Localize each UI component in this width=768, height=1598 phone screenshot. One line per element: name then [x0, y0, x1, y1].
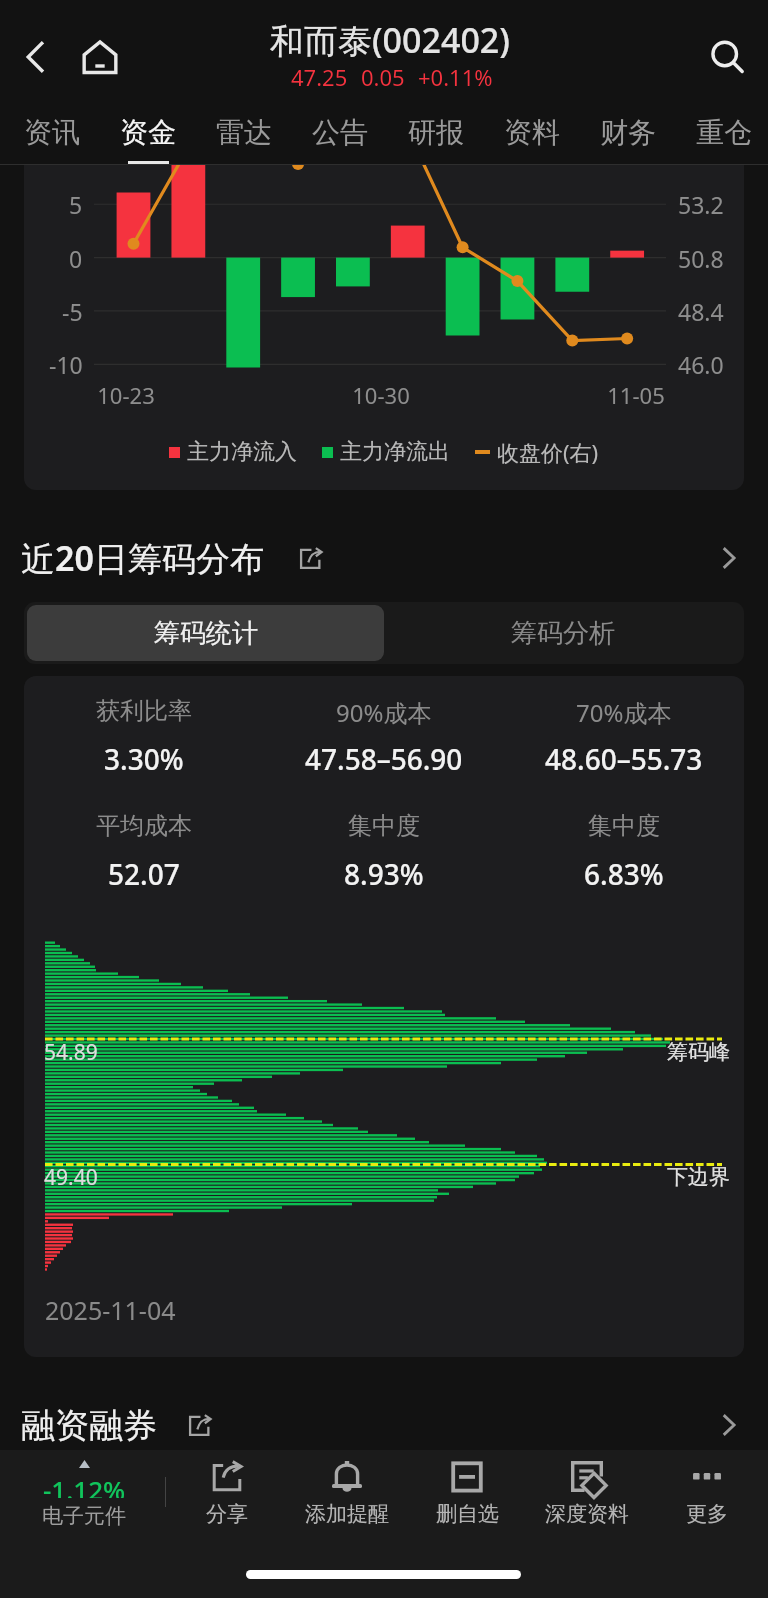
staticText: -5	[62, 296, 83, 327]
staticText: 雷达	[216, 115, 272, 150]
staticText: 90%成本	[336, 696, 432, 729]
staticText: 8.93%	[344, 855, 424, 893]
staticText: 资讯	[24, 115, 80, 150]
staticText: 49.40	[44, 1163, 98, 1191]
button[interactable]: 研报	[388, 100, 484, 165]
staticText: +0.11%	[418, 62, 493, 92]
staticText: 筹码峰	[667, 1039, 730, 1065]
staticText: 添加提醒	[305, 1501, 389, 1525]
staticText: 深度资料	[545, 1501, 629, 1525]
staticText: 2025-11-04	[45, 1293, 176, 1321]
button[interactable]: 雷达	[196, 100, 292, 165]
button[interactable]: 更多	[649, 1450, 765, 1542]
staticText: 收盘价(右)	[497, 437, 599, 467]
staticText: 资金	[120, 115, 176, 150]
staticText: 47.25	[291, 62, 348, 92]
button[interactable]: 资金	[100, 100, 196, 165]
button[interactable]: 删自选	[409, 1450, 525, 1542]
staticText: 0	[69, 243, 83, 274]
button[interactable]: 公告	[292, 100, 388, 165]
button[interactable]: 深度资料	[529, 1450, 645, 1542]
staticText: 10-30	[352, 380, 410, 410]
staticText: -1.12%	[43, 1472, 126, 1498]
staticText: 50.8	[678, 243, 724, 274]
staticText: 重仓	[696, 115, 752, 150]
button[interactable]: Search	[701, 31, 753, 83]
staticText: 10-23	[97, 380, 155, 410]
button[interactable]: 重仓	[676, 100, 768, 165]
button[interactable]: Back	[9, 31, 61, 83]
staticText: 删自选	[436, 1501, 499, 1525]
staticText: 47.58–56.90	[305, 740, 463, 778]
staticText: -10	[49, 349, 83, 380]
staticText: 主力净流入	[187, 438, 297, 466]
button[interactable]: -1.12%	[0, 1450, 168, 1542]
staticText: 48.60–55.73	[545, 740, 703, 778]
staticText: 11-05	[607, 380, 665, 410]
staticText: 48.4	[678, 296, 724, 327]
button[interactable]: 财务	[580, 100, 676, 165]
staticText: 下边界	[667, 1164, 730, 1190]
staticText: 资料	[504, 115, 560, 150]
staticText: 53.2	[678, 189, 724, 220]
button[interactable]: 分享	[169, 1450, 285, 1542]
staticText: 平均成本	[96, 811, 192, 841]
staticText: 46.0	[678, 349, 724, 380]
staticText: 财务	[600, 115, 656, 150]
staticText: 分享	[206, 1501, 248, 1525]
staticText: 近20日筹码分布	[21, 535, 264, 581]
staticText: 公告	[312, 115, 368, 150]
staticText: 0.05	[361, 62, 405, 92]
button[interactable]: Home	[74, 31, 126, 83]
staticText: 5	[69, 189, 83, 220]
button[interactable]: 筹码分析	[384, 605, 741, 661]
staticText: 6.83%	[584, 855, 664, 893]
staticText: 筹码统计	[154, 617, 258, 650]
button[interactable]: 资料	[484, 100, 580, 165]
button[interactable]: 筹码统计	[27, 605, 384, 661]
staticText: 70%成本	[576, 696, 672, 729]
staticText: 电子元件	[42, 1503, 126, 1527]
staticText: 融资融券	[21, 1404, 157, 1447]
button[interactable]: 添加提醒	[289, 1450, 405, 1542]
staticText: 研报	[408, 115, 464, 150]
button[interactable]: 融资融券	[0, 1391, 768, 1459]
staticText: 52.07	[108, 855, 180, 893]
staticText: 主力净流出	[340, 438, 450, 466]
button[interactable]: 近20日筹码分布	[0, 524, 768, 592]
staticText: 3.30%	[104, 740, 184, 778]
staticText: 集中度	[588, 811, 660, 841]
staticText: 54.89	[44, 1038, 98, 1066]
staticText: 筹码分析	[511, 617, 615, 650]
staticText: 更多	[686, 1501, 728, 1525]
button[interactable]: 资讯	[4, 100, 100, 165]
staticText: 集中度	[348, 811, 420, 841]
staticText: 获利比率	[96, 696, 192, 726]
staticText: 和而泰(002402)	[270, 17, 510, 58]
